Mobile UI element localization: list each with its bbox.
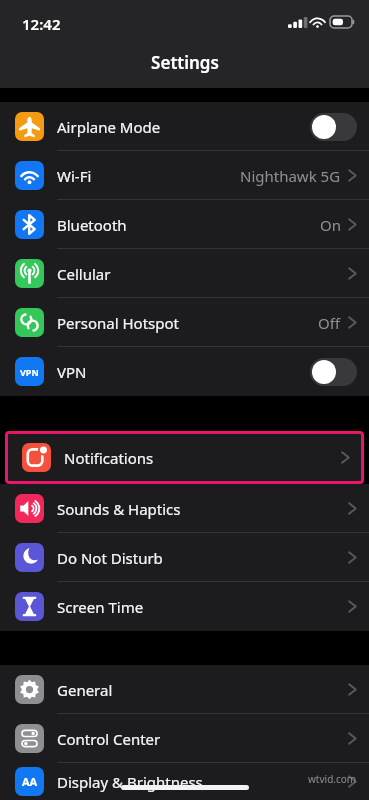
staticText: Settings [151,51,219,74]
staticText: Cellular [57,264,348,284]
button[interactable]: Screen Time [0,582,369,631]
staticText: Notifications [64,448,341,468]
button[interactable]: AA [0,763,369,800]
button[interactable]: Wi-Fi [0,151,369,200]
button[interactable]: Airplane Mode [0,102,369,151]
button[interactable]: Cellular [0,249,369,298]
staticText: Display & Brightness [57,772,348,792]
staticText: AA [22,774,38,789]
button[interactable]: Notifications [7,433,362,482]
button[interactable]: VPN [0,347,369,396]
staticText: On [320,215,341,235]
button[interactable]: Personal Hotspot [0,298,369,347]
staticText: Off [318,313,341,333]
button[interactable]: Control Center [0,714,369,763]
staticText: VPN [57,362,310,382]
staticText: wtvid.com [308,772,357,786]
staticText: VPN [20,366,39,378]
staticText: Bluetooth [57,215,320,235]
staticText: Do Not Disturb [57,548,348,568]
staticText: 12:42 [22,14,61,34]
staticText: Screen Time [57,597,348,617]
button[interactable]: General [0,665,369,714]
button[interactable]: Toggle VPN [310,358,357,386]
staticText: Sounds & Haptics [57,499,348,519]
staticText: Wi-Fi [57,166,240,186]
button[interactable]: Sounds & Haptics [0,484,369,533]
staticText: General [57,680,348,700]
button[interactable]: Bluetooth [0,200,369,249]
staticText: Nighthawk 5G [240,166,341,186]
staticText: Control Center [57,729,348,749]
staticText: Airplane Mode [57,117,310,137]
staticText: Personal Hotspot [57,313,318,333]
button[interactable]: Toggle Airplane Mode [310,113,357,141]
button[interactable]: Do Not Disturb [0,533,369,582]
